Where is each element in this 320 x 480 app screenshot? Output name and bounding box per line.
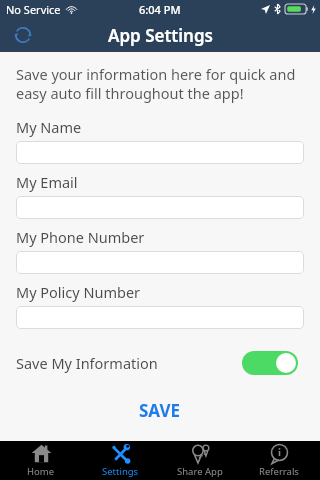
staticText: Share App	[177, 465, 223, 478]
button[interactable]: Save My Information toggle	[242, 351, 298, 375]
staticText: SAVE	[139, 399, 181, 422]
staticText: Settings	[102, 465, 139, 478]
staticText: Referrals	[259, 465, 299, 478]
staticText: My Policy Number	[16, 282, 141, 302]
button[interactable]: Referrals	[241, 441, 317, 480]
staticText: Save your information here for quick and…	[16, 64, 298, 103]
staticText: Save My Information	[16, 353, 158, 373]
staticText: Home	[27, 465, 55, 478]
button[interactable]: Settings	[82, 441, 158, 480]
staticText: App Settings	[108, 24, 213, 47]
button[interactable]: Share App	[162, 441, 238, 480]
button[interactable]	[16, 251, 304, 274]
staticText: My Email	[16, 172, 78, 192]
button[interactable]	[16, 306, 304, 329]
staticText: My Name	[16, 117, 82, 137]
button[interactable]	[16, 196, 304, 219]
button[interactable]: SAVE	[139, 399, 181, 422]
button[interactable]: Refresh	[10, 22, 36, 48]
staticText: My Phone Number	[16, 227, 145, 247]
staticText: No Service	[6, 2, 61, 17]
button[interactable]: Home	[3, 441, 79, 480]
staticText: 6:04 PM	[139, 2, 181, 17]
button[interactable]	[16, 141, 304, 164]
